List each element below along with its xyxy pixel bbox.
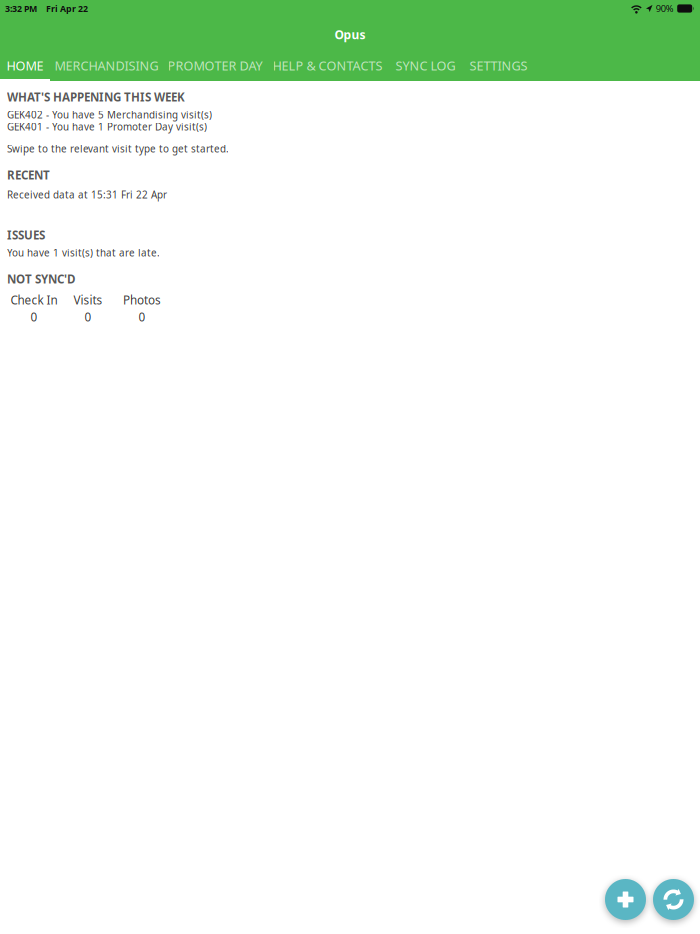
staticText: NOT SYNC'D [7,271,75,287]
staticText: RECENT [7,167,50,183]
staticText: Swipe to the relevant visit type to get … [7,142,229,155]
button[interactable]: SYNC LOG [388,52,463,81]
staticText: 90% [656,2,674,15]
staticText: Visits [73,292,102,308]
staticText: SETTINGS [469,57,527,74]
staticText: PROMOTER DAY [167,57,262,74]
staticText: Received data at 15:31 Fri 22 Apr [7,188,167,201]
staticText: GEK401 - You have 1 Promoter Day visit(s… [7,120,207,133]
staticText: 3:32 PM [5,2,37,14]
staticText: 0 [30,309,37,325]
staticText: 0 [138,309,145,325]
button[interactable]: HELP & CONTACTS [267,52,388,81]
button[interactable]: SETTINGS [463,52,534,81]
staticText: HELP & CONTACTS [272,57,382,74]
staticText: MERCHANDISING [54,57,158,74]
staticText: HOME [6,57,43,74]
staticText: Opus [334,26,365,43]
button[interactable]: HOME [0,52,50,81]
staticText: SYNC LOG [395,57,455,74]
staticText: Photos [123,292,161,308]
staticText: GEK402 - You have 5 Merchandising visit(… [7,108,212,121]
staticText: You have 1 visit(s) that are late. [7,246,160,259]
button[interactable]: PROMOTER DAY [163,52,267,81]
staticText: ISSUES [7,227,45,243]
button[interactable]: Sync [653,879,694,920]
button[interactable]: Add [605,879,646,920]
staticText: Fri Apr 22 [46,2,88,14]
staticText: WHAT'S HAPPENING THIS WEEK [7,89,185,105]
staticText: 0 [84,309,91,325]
staticText: Check In [10,292,57,308]
button[interactable]: MERCHANDISING [50,52,163,81]
